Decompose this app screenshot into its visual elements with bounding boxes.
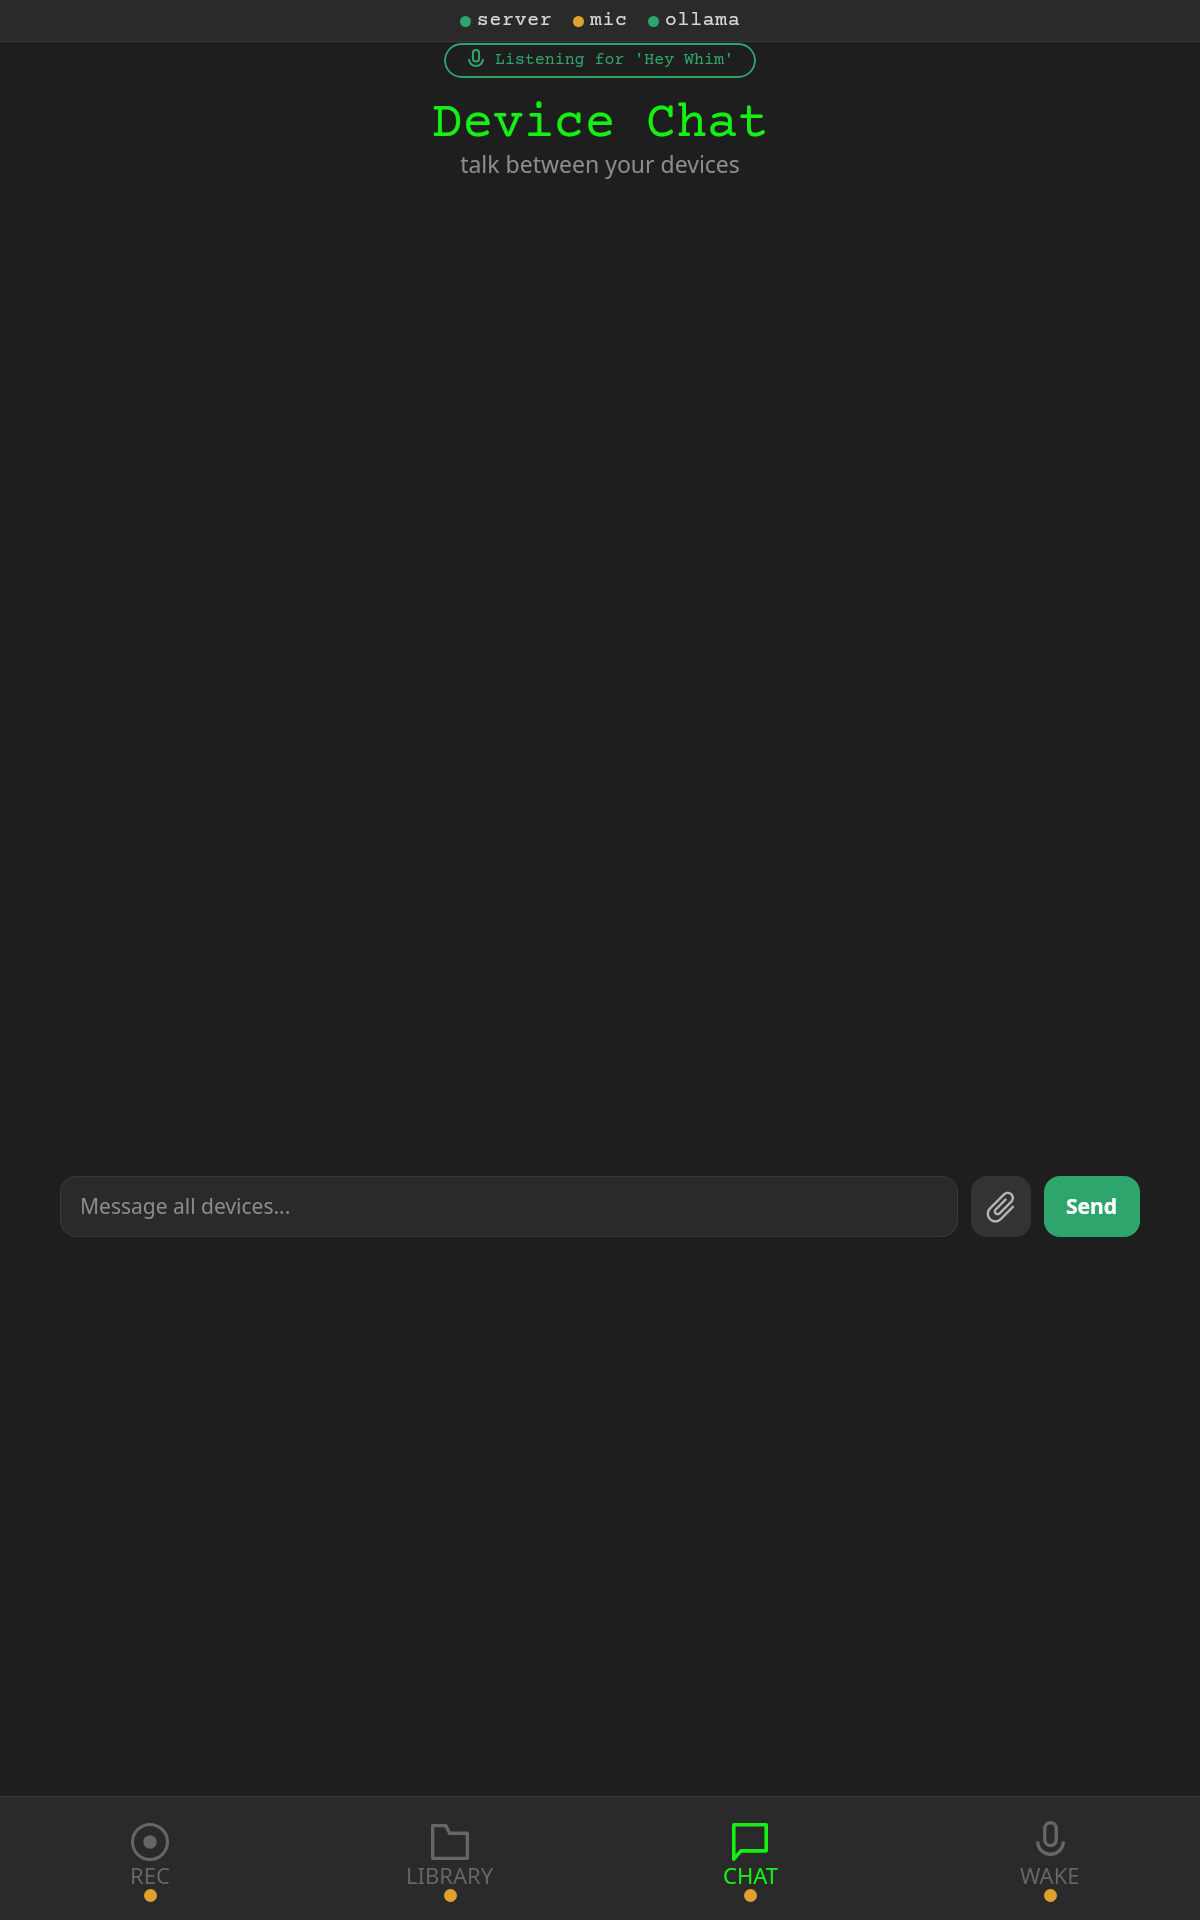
staticText: Message all devices... bbox=[80, 1192, 291, 1221]
staticText: WAKE bbox=[1020, 1860, 1080, 1890]
button[interactable]: Listening for 'Hey Whim' bbox=[444, 43, 756, 78]
button[interactable]: Send bbox=[1044, 1176, 1140, 1237]
staticText: mic bbox=[590, 10, 628, 32]
staticText: CHAT bbox=[723, 1860, 778, 1890]
button[interactable]: REC bbox=[0, 1797, 300, 1920]
staticText: server bbox=[477, 10, 553, 32]
button[interactable]: WAKE bbox=[900, 1797, 1200, 1920]
staticText: Listening for 'Hey Whim' bbox=[495, 51, 734, 70]
staticText: Send bbox=[1066, 1192, 1118, 1221]
staticText: LIBRARY bbox=[406, 1860, 494, 1890]
button[interactable]: Attach file bbox=[971, 1176, 1031, 1237]
button[interactable]: LIBRARY bbox=[300, 1797, 600, 1920]
staticText: talk between your devices bbox=[0, 148, 1200, 179]
button[interactable]: CHAT bbox=[600, 1797, 900, 1920]
staticText: Device Chat bbox=[0, 96, 1200, 153]
button[interactable]: Message all devices... bbox=[60, 1176, 958, 1237]
staticText: REC bbox=[130, 1860, 170, 1890]
staticText: ollama bbox=[665, 10, 741, 32]
